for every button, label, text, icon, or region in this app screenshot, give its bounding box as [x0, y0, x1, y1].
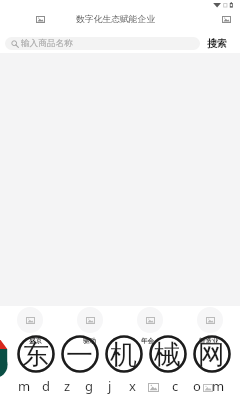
staticText: o [193, 377, 201, 395]
staticText: z [64, 377, 71, 395]
staticText: j [108, 377, 112, 395]
button[interactable]: Category [66, 306, 114, 334]
staticText: 盛京 [29, 337, 42, 345]
button[interactable]: 输入商品名称 [5, 37, 200, 50]
staticText: 智造业 [199, 337, 219, 345]
staticText: m [212, 377, 225, 395]
staticText: 年会 [141, 337, 154, 345]
staticText: 输入商品名称 [21, 38, 73, 49]
staticText: 数字化生态赋能企业 [76, 14, 156, 25]
staticText: 械 [154, 338, 181, 372]
button[interactable]: Logo [33, 12, 48, 27]
staticText: 驱动 [83, 337, 96, 345]
staticText: c [172, 377, 179, 395]
staticText: d [42, 377, 50, 395]
staticText: 机 [110, 338, 137, 372]
button[interactable]: Home [6, 306, 54, 334]
button[interactable]: Profile [186, 306, 234, 334]
staticText: g [85, 377, 93, 395]
button[interactable]: Cart [126, 306, 174, 334]
staticText: 网 [198, 338, 225, 372]
staticText: 东 [22, 338, 49, 372]
button[interactable]: 搜索 [206, 35, 228, 52]
button[interactable]: More [219, 12, 234, 27]
staticText: 一 [66, 338, 93, 372]
staticText: 搜索 [207, 37, 227, 50]
staticText: m [18, 377, 31, 395]
staticText: x [129, 377, 136, 395]
